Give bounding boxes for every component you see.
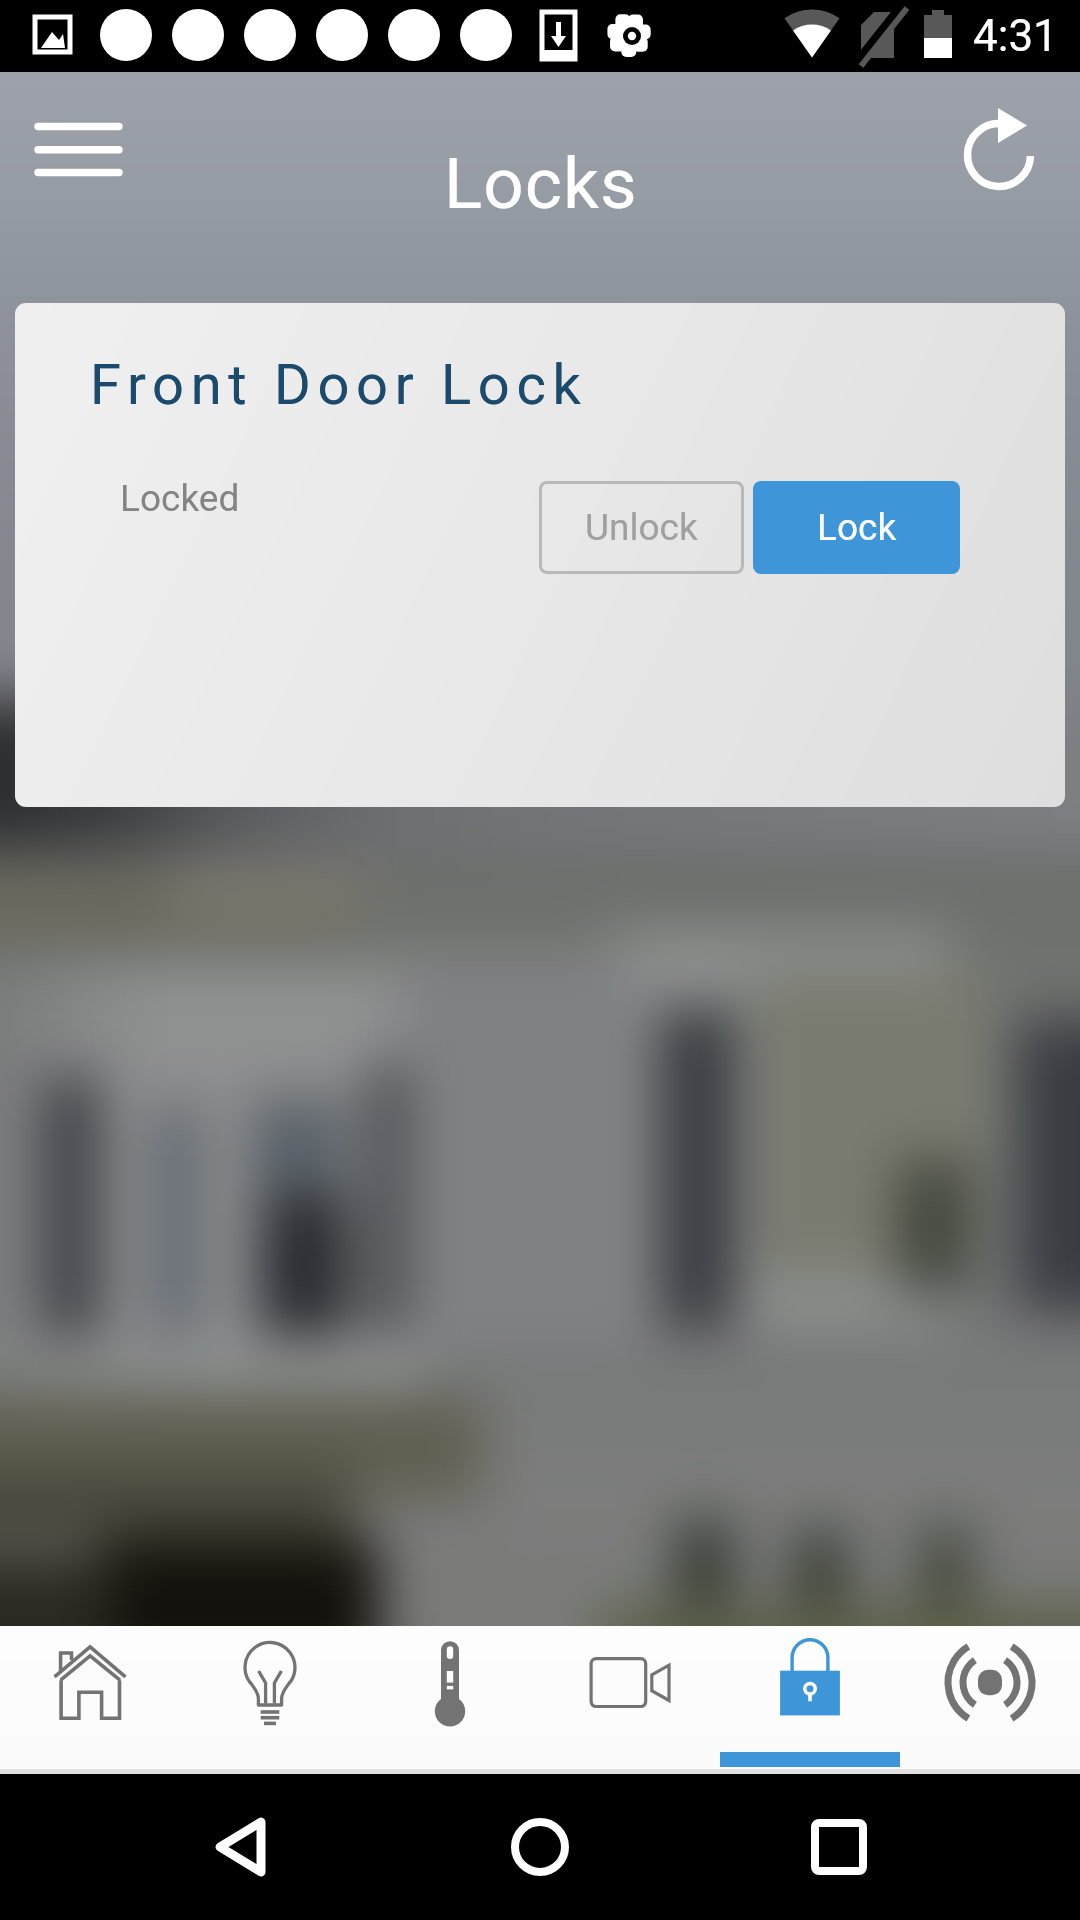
staticText: Unlock — [585, 506, 698, 549]
staticText: Front Door Lock — [90, 352, 588, 418]
button[interactable]: Unlock — [539, 481, 744, 574]
button[interactable]: Lights — [180, 1626, 360, 1774]
button[interactable]: Locks — [720, 1626, 900, 1774]
button[interactable]: Cameras — [540, 1626, 720, 1774]
button[interactable]: Back — [180, 1774, 306, 1920]
button[interactable]: Refresh — [954, 109, 1046, 201]
button[interactable]: Lock — [753, 481, 960, 574]
staticText: Lock — [817, 506, 897, 549]
staticText: Front Door Lock — [90, 352, 588, 418]
button[interactable]: Recent apps — [776, 1774, 902, 1920]
staticText: 4:31 — [973, 10, 1058, 62]
button[interactable]: Home — [0, 1626, 180, 1774]
button[interactable]: Sensors — [900, 1626, 1080, 1774]
button[interactable]: Home — [477, 1774, 603, 1920]
staticText: Locks — [444, 142, 638, 225]
button[interactable]: Open navigation menu — [38, 119, 119, 181]
staticText: Locked — [120, 477, 240, 520]
button[interactable]: Thermostat — [360, 1626, 540, 1774]
